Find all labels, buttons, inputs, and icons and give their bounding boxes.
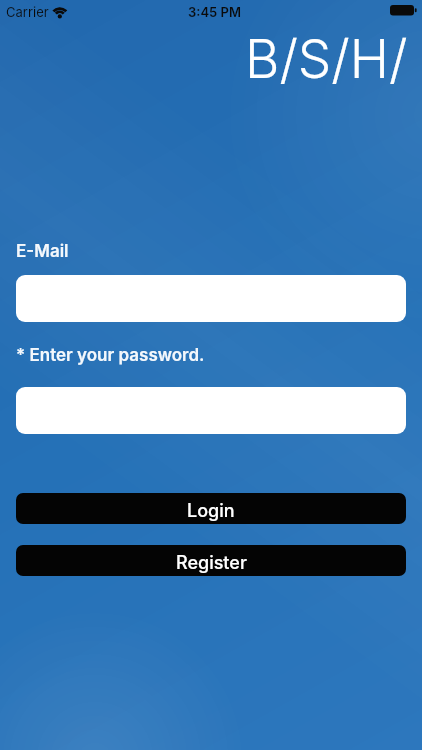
button[interactable]: Register xyxy=(16,545,406,576)
staticText: * Enter your password. xyxy=(16,345,205,366)
staticText: Carrier xyxy=(6,4,49,20)
staticText: 3:45 PM xyxy=(188,4,241,20)
staticText: E-Mail xyxy=(16,241,69,262)
button[interactable] xyxy=(16,387,406,434)
staticText: Register xyxy=(176,552,247,574)
button[interactable]: Login xyxy=(16,493,406,524)
staticText: Login xyxy=(187,500,235,522)
staticText: B/S/H/ xyxy=(245,27,408,91)
button[interactable] xyxy=(16,275,406,322)
